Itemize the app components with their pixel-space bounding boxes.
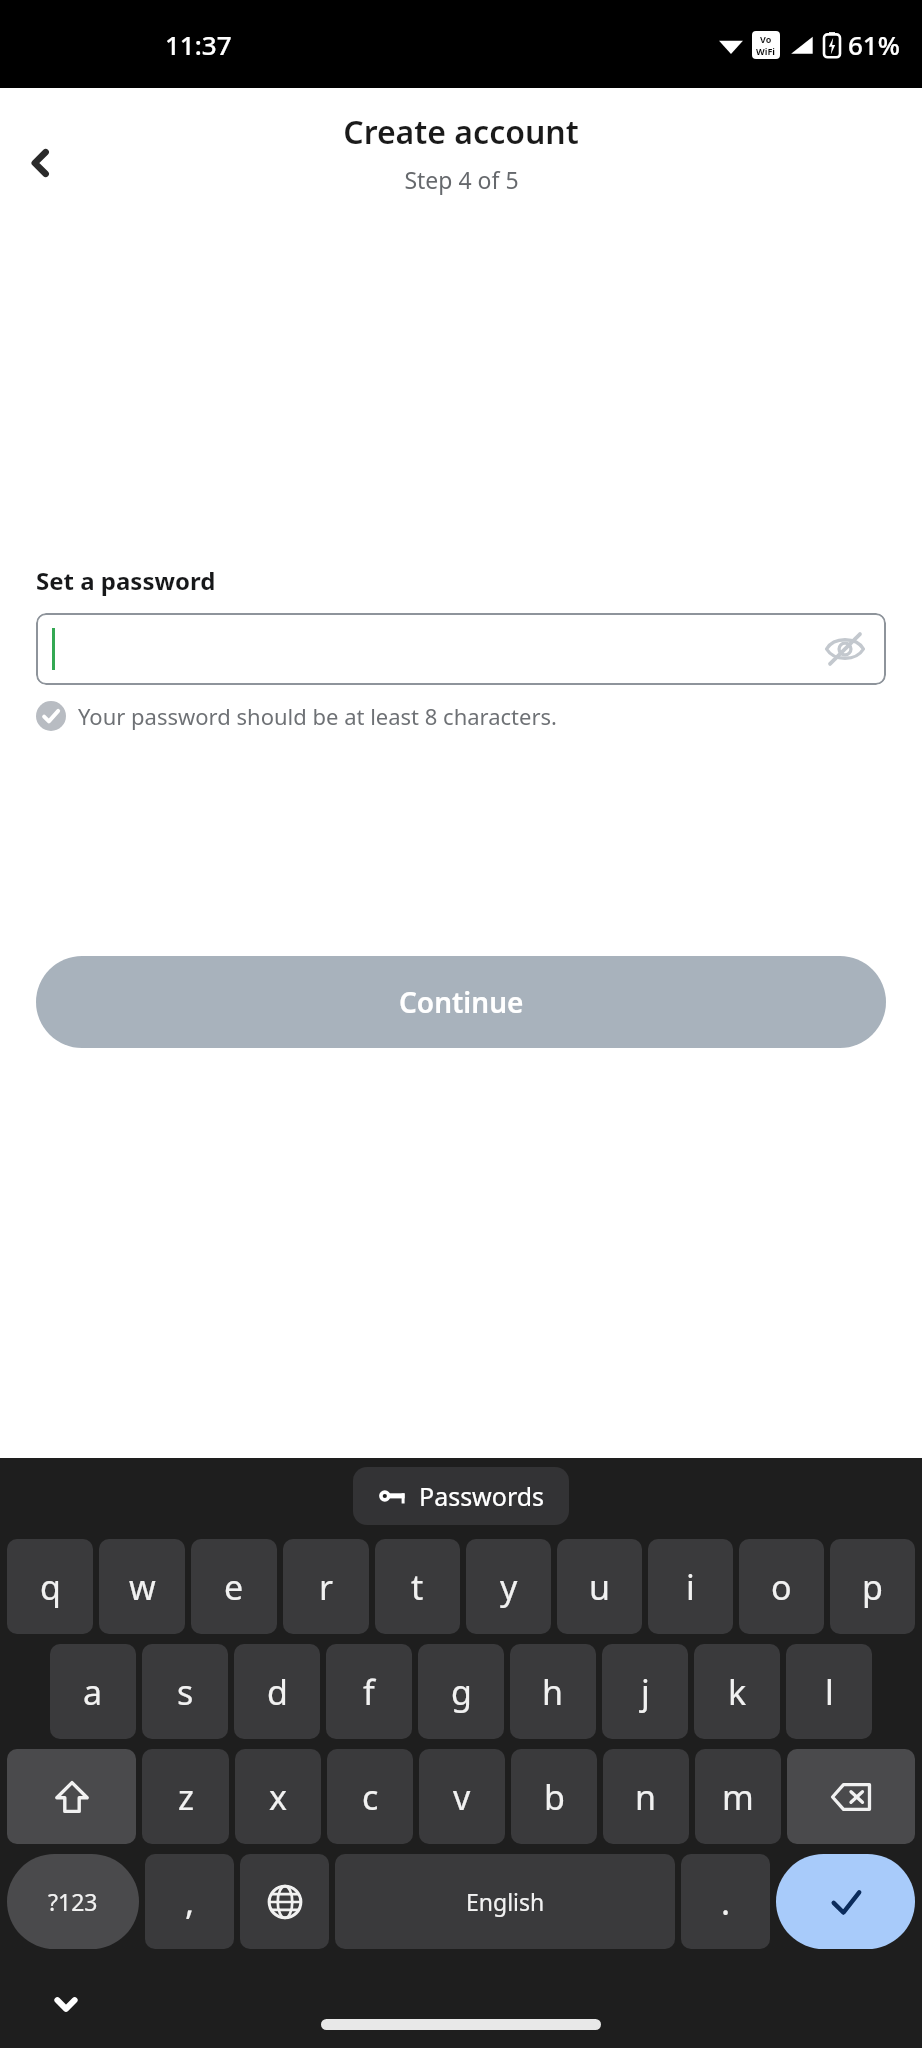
staticText: e	[224, 1564, 244, 1610]
staticText: c	[362, 1774, 379, 1820]
button[interactable]: u	[557, 1539, 642, 1634]
button[interactable]: Continue	[36, 956, 886, 1048]
staticText: y	[500, 1564, 518, 1610]
button[interactable]: z	[142, 1749, 229, 1844]
button[interactable]: English	[335, 1854, 675, 1949]
button[interactable]: r	[283, 1539, 369, 1634]
button[interactable]: Hide keyboard	[42, 1980, 90, 2028]
staticText: WiFi	[756, 45, 776, 57]
staticText: q	[40, 1564, 61, 1610]
button[interactable]: a	[50, 1644, 136, 1739]
staticText: p	[862, 1564, 883, 1610]
button[interactable]: w	[99, 1539, 185, 1634]
button[interactable]: ?123	[7, 1854, 139, 1949]
button[interactable]: y	[466, 1539, 551, 1634]
staticText: English	[466, 1886, 545, 1917]
staticText: w	[129, 1564, 156, 1610]
button[interactable]: Passwords	[353, 1467, 569, 1525]
button[interactable]: s	[142, 1644, 228, 1739]
button[interactable]: x	[235, 1749, 321, 1844]
button[interactable]: p	[830, 1539, 915, 1634]
button[interactable]: j	[602, 1644, 688, 1739]
staticText: j	[641, 1669, 650, 1715]
button[interactable]: Show password	[36, 613, 886, 685]
staticText: .	[721, 1879, 731, 1925]
button[interactable]: q	[7, 1539, 93, 1634]
staticText: v	[453, 1774, 471, 1820]
button[interactable]: Shift	[7, 1749, 136, 1844]
staticText: l	[825, 1669, 834, 1715]
button[interactable]: d	[234, 1644, 320, 1739]
button[interactable]: Change language	[240, 1854, 329, 1949]
staticText: 61%	[848, 27, 900, 62]
button[interactable]: ,	[145, 1854, 234, 1949]
button[interactable]: o	[739, 1539, 824, 1634]
button[interactable]: c	[327, 1749, 413, 1844]
button[interactable]: g	[418, 1644, 504, 1739]
staticText: Set a password	[36, 564, 216, 597]
staticText: b	[544, 1774, 565, 1820]
button[interactable]: l	[786, 1644, 872, 1739]
staticText: h	[542, 1669, 564, 1715]
button[interactable]: h	[510, 1644, 596, 1739]
staticText: Passwords	[419, 1479, 545, 1513]
staticText: u	[589, 1564, 611, 1610]
button[interactable]: .	[681, 1854, 770, 1949]
staticText: i	[686, 1564, 695, 1610]
staticText: z	[178, 1774, 194, 1820]
button[interactable]: Show password	[822, 626, 868, 672]
staticText: t	[411, 1564, 424, 1610]
staticText: Create account	[343, 110, 579, 154]
staticText: f	[363, 1669, 375, 1715]
button[interactable]: Backspace	[787, 1749, 915, 1844]
button[interactable]: v	[419, 1749, 505, 1844]
staticText: Step 4 of 5	[404, 164, 519, 195]
staticText: 11:37	[165, 27, 232, 62]
button[interactable]: Back	[14, 136, 68, 190]
staticText: m	[722, 1774, 754, 1820]
button[interactable]: n	[603, 1749, 689, 1844]
staticText: o	[771, 1564, 792, 1610]
staticText: k	[728, 1669, 747, 1715]
staticText: g	[451, 1669, 472, 1715]
staticText: x	[269, 1774, 287, 1820]
staticText: Continue	[399, 983, 524, 1021]
staticText: d	[267, 1669, 288, 1715]
staticText: Vo	[760, 33, 772, 45]
staticText: r	[319, 1564, 334, 1610]
staticText: ?123	[48, 1886, 98, 1917]
staticText: n	[635, 1774, 657, 1820]
button[interactable]: f	[326, 1644, 412, 1739]
button[interactable]: i	[648, 1539, 733, 1634]
button[interactable]: e	[191, 1539, 277, 1634]
button[interactable]: Enter	[776, 1854, 915, 1949]
button[interactable]: t	[375, 1539, 460, 1634]
button[interactable]: m	[695, 1749, 781, 1844]
staticText: Your password should be at least 8 chara…	[78, 701, 557, 731]
button[interactable]: k	[694, 1644, 780, 1739]
button[interactable]: b	[511, 1749, 597, 1844]
staticText: s	[177, 1669, 194, 1715]
staticText: ,	[185, 1879, 195, 1925]
staticText: a	[83, 1669, 103, 1715]
